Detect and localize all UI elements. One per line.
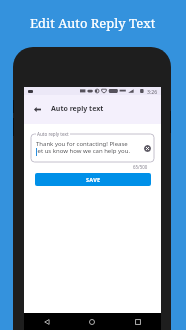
staticText: Thank you for contacting! Please let us … xyxy=(36,141,131,155)
button[interactable]: Back xyxy=(30,102,44,116)
staticText: Edit Auto Reply Text xyxy=(30,14,156,32)
button[interactable]: Back xyxy=(24,313,69,330)
staticText: Auto reply text xyxy=(51,104,104,114)
button[interactable]: SAVE xyxy=(35,173,151,186)
staticText: Auto reply text xyxy=(37,131,69,137)
staticText: SAVE xyxy=(86,176,101,183)
staticText: 3:26 xyxy=(147,88,158,95)
button[interactable]: Clear text xyxy=(144,145,151,152)
button[interactable]: Home xyxy=(69,313,115,330)
button[interactable]: Recents xyxy=(115,313,161,330)
staticText: 65/500 xyxy=(133,164,148,170)
